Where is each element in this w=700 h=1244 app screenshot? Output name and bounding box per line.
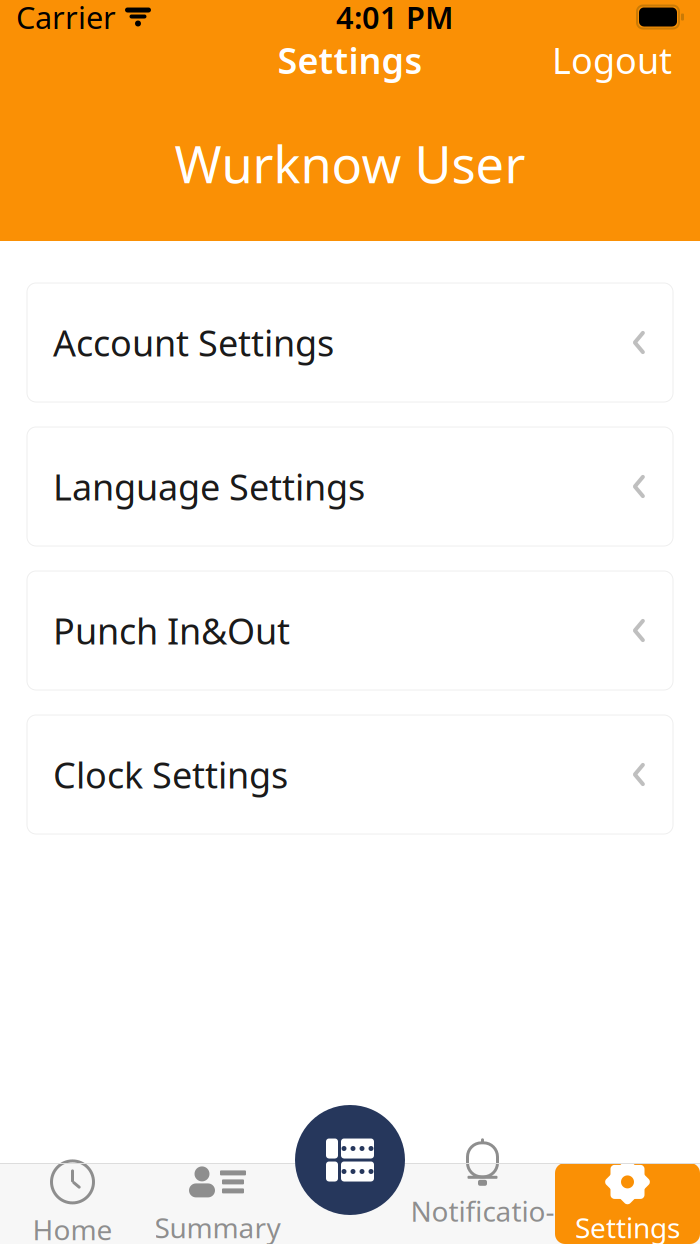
staticText: Account Settings	[53, 319, 334, 366]
button[interactable]: Clock Settings	[27, 715, 673, 834]
button[interactable]: Account Settings	[27, 283, 673, 402]
staticText: Settings	[575, 1209, 680, 1244]
staticText: Carrier	[16, 0, 116, 37]
staticText: Notifications	[410, 1192, 554, 1244]
button[interactable]: Home	[0, 1163, 145, 1244]
button[interactable]: Language Settings	[27, 427, 673, 546]
button[interactable]: Punch In&Out	[27, 571, 673, 690]
button[interactable]: Summary	[145, 1163, 290, 1244]
button[interactable]: Logout	[538, 28, 686, 92]
staticText: Summary	[154, 1209, 280, 1244]
staticText: Language Settings	[53, 463, 365, 510]
button[interactable]: Notifications	[410, 1163, 555, 1244]
staticText: Punch In&Out	[53, 607, 290, 654]
staticText: Home	[32, 1211, 112, 1244]
staticText: Settings	[277, 36, 422, 84]
button[interactable]: Settings	[555, 1163, 700, 1244]
staticText: Wurknow User	[174, 130, 525, 197]
button[interactable]: Time clock	[295, 1105, 405, 1215]
staticText: 4:01 PM	[336, 0, 453, 37]
staticText: Logout	[552, 36, 672, 84]
staticText: Clock Settings	[53, 751, 288, 798]
